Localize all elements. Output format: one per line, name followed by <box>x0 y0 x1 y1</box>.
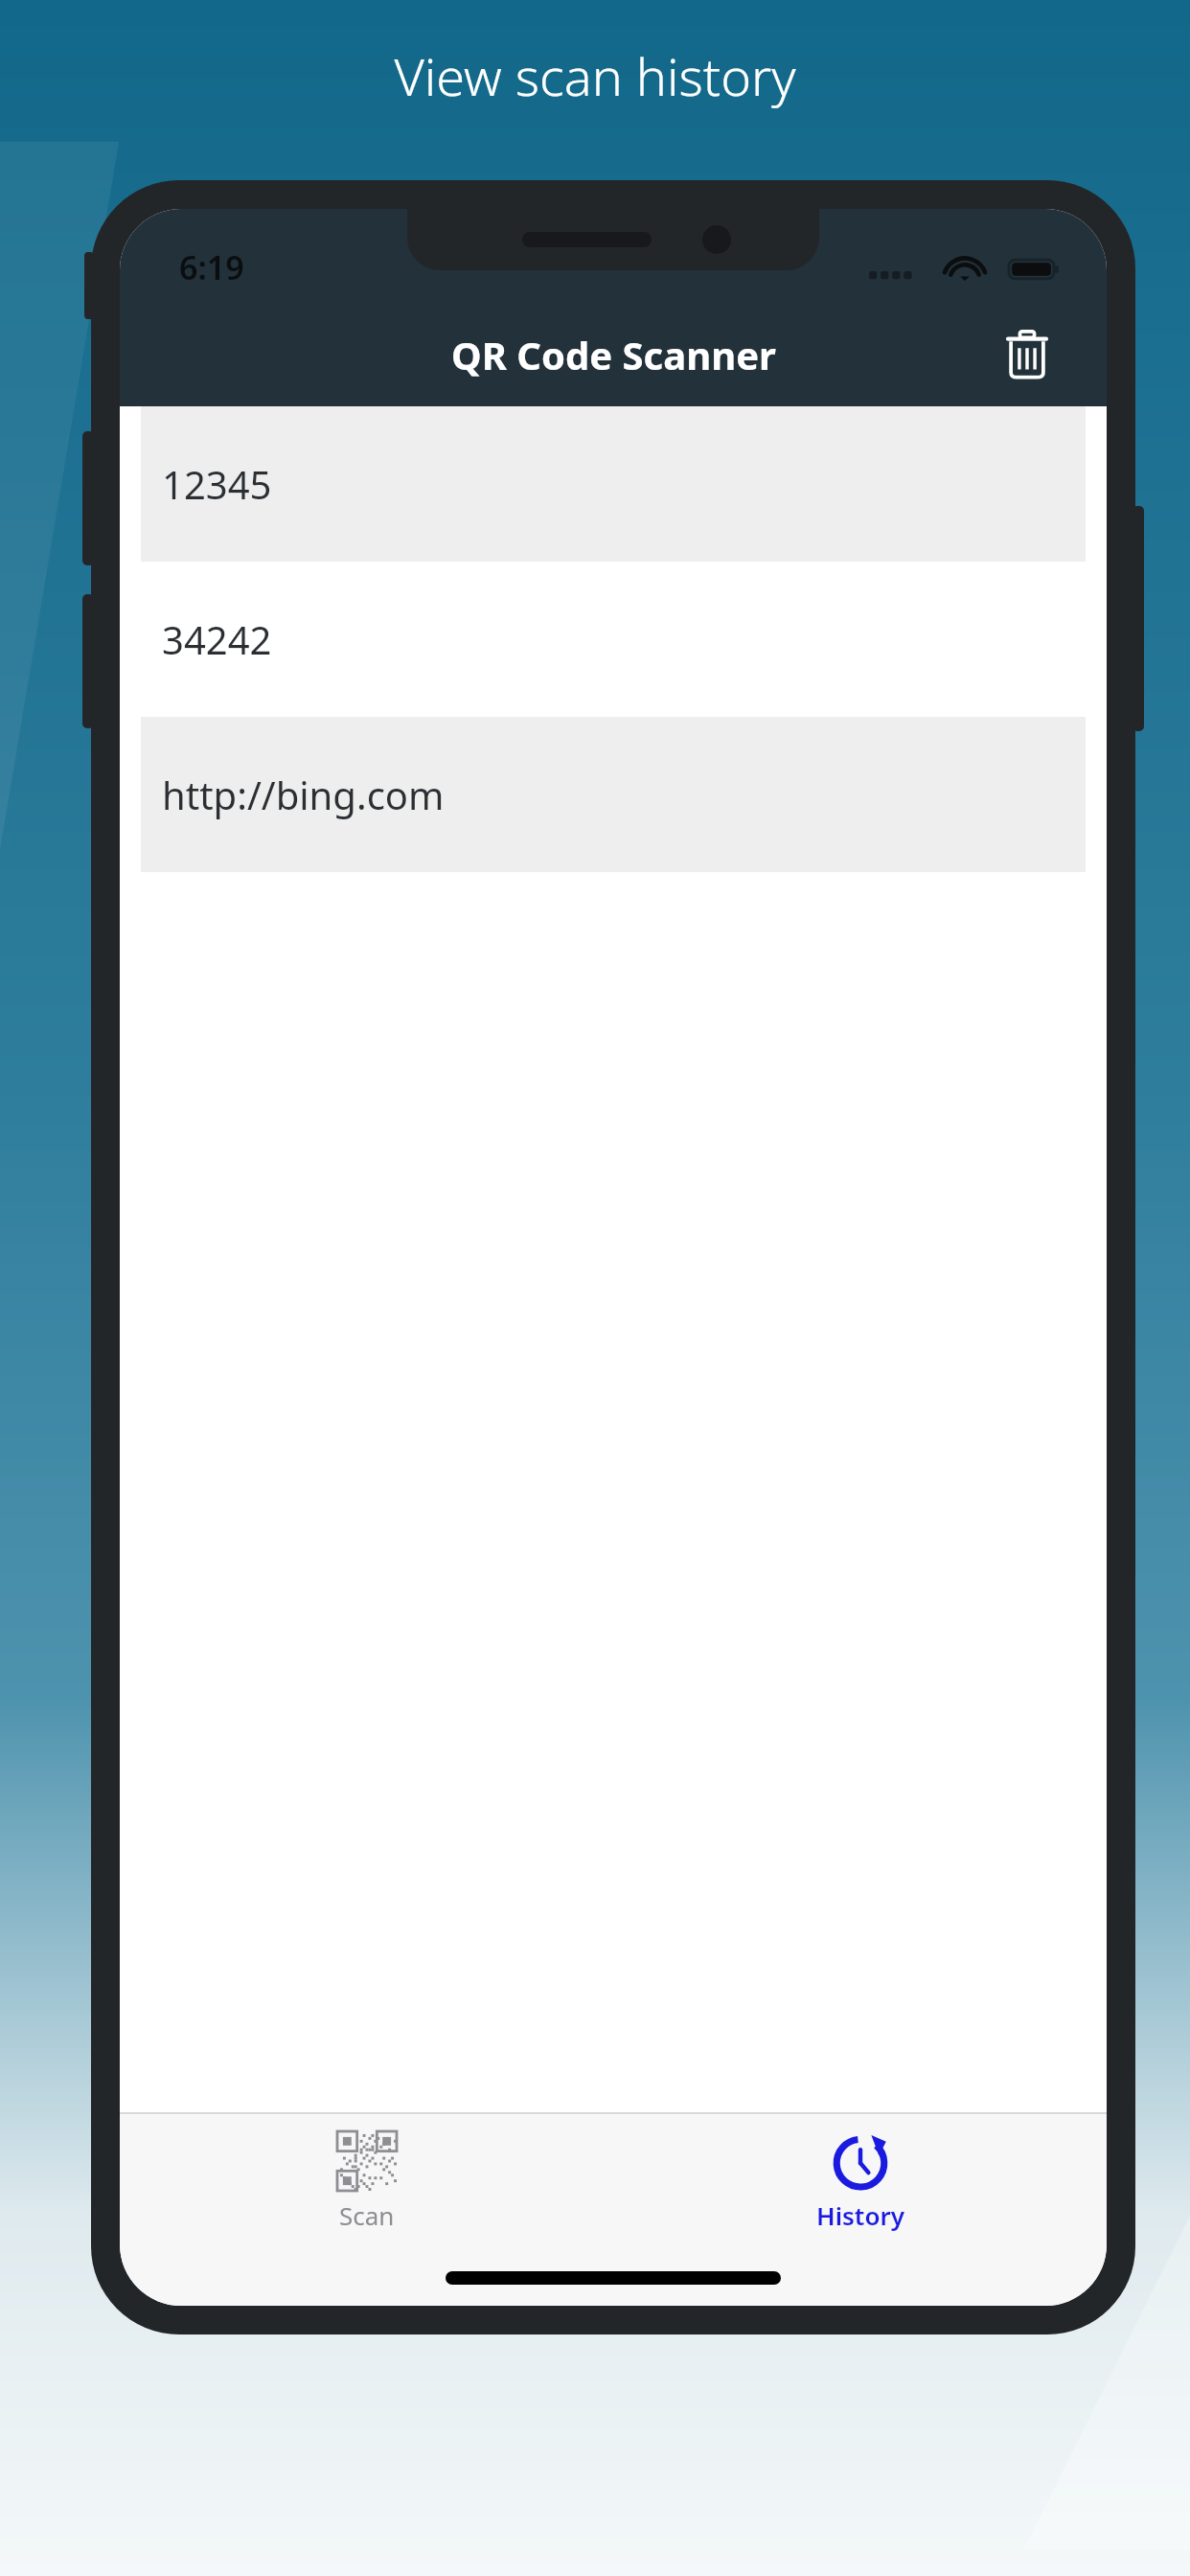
staticText: QR Code Scanner <box>451 329 776 380</box>
staticText: 6:19 <box>179 245 244 289</box>
button[interactable]: http://bing.com <box>141 717 1086 872</box>
button[interactable]: Scan <box>120 2131 613 2232</box>
staticText: View scan history <box>0 40 1190 111</box>
staticText: History <box>816 2198 904 2232</box>
button[interactable]: Delete history <box>986 313 1068 396</box>
staticText: 34242 <box>162 613 272 665</box>
staticText: http://bing.com <box>162 769 445 820</box>
button[interactable]: History <box>613 2131 1107 2232</box>
staticText: 12345 <box>162 458 272 510</box>
button[interactable]: 12345 <box>141 406 1086 562</box>
button[interactable]: 34242 <box>141 562 1086 717</box>
staticText: Scan <box>339 2198 395 2232</box>
